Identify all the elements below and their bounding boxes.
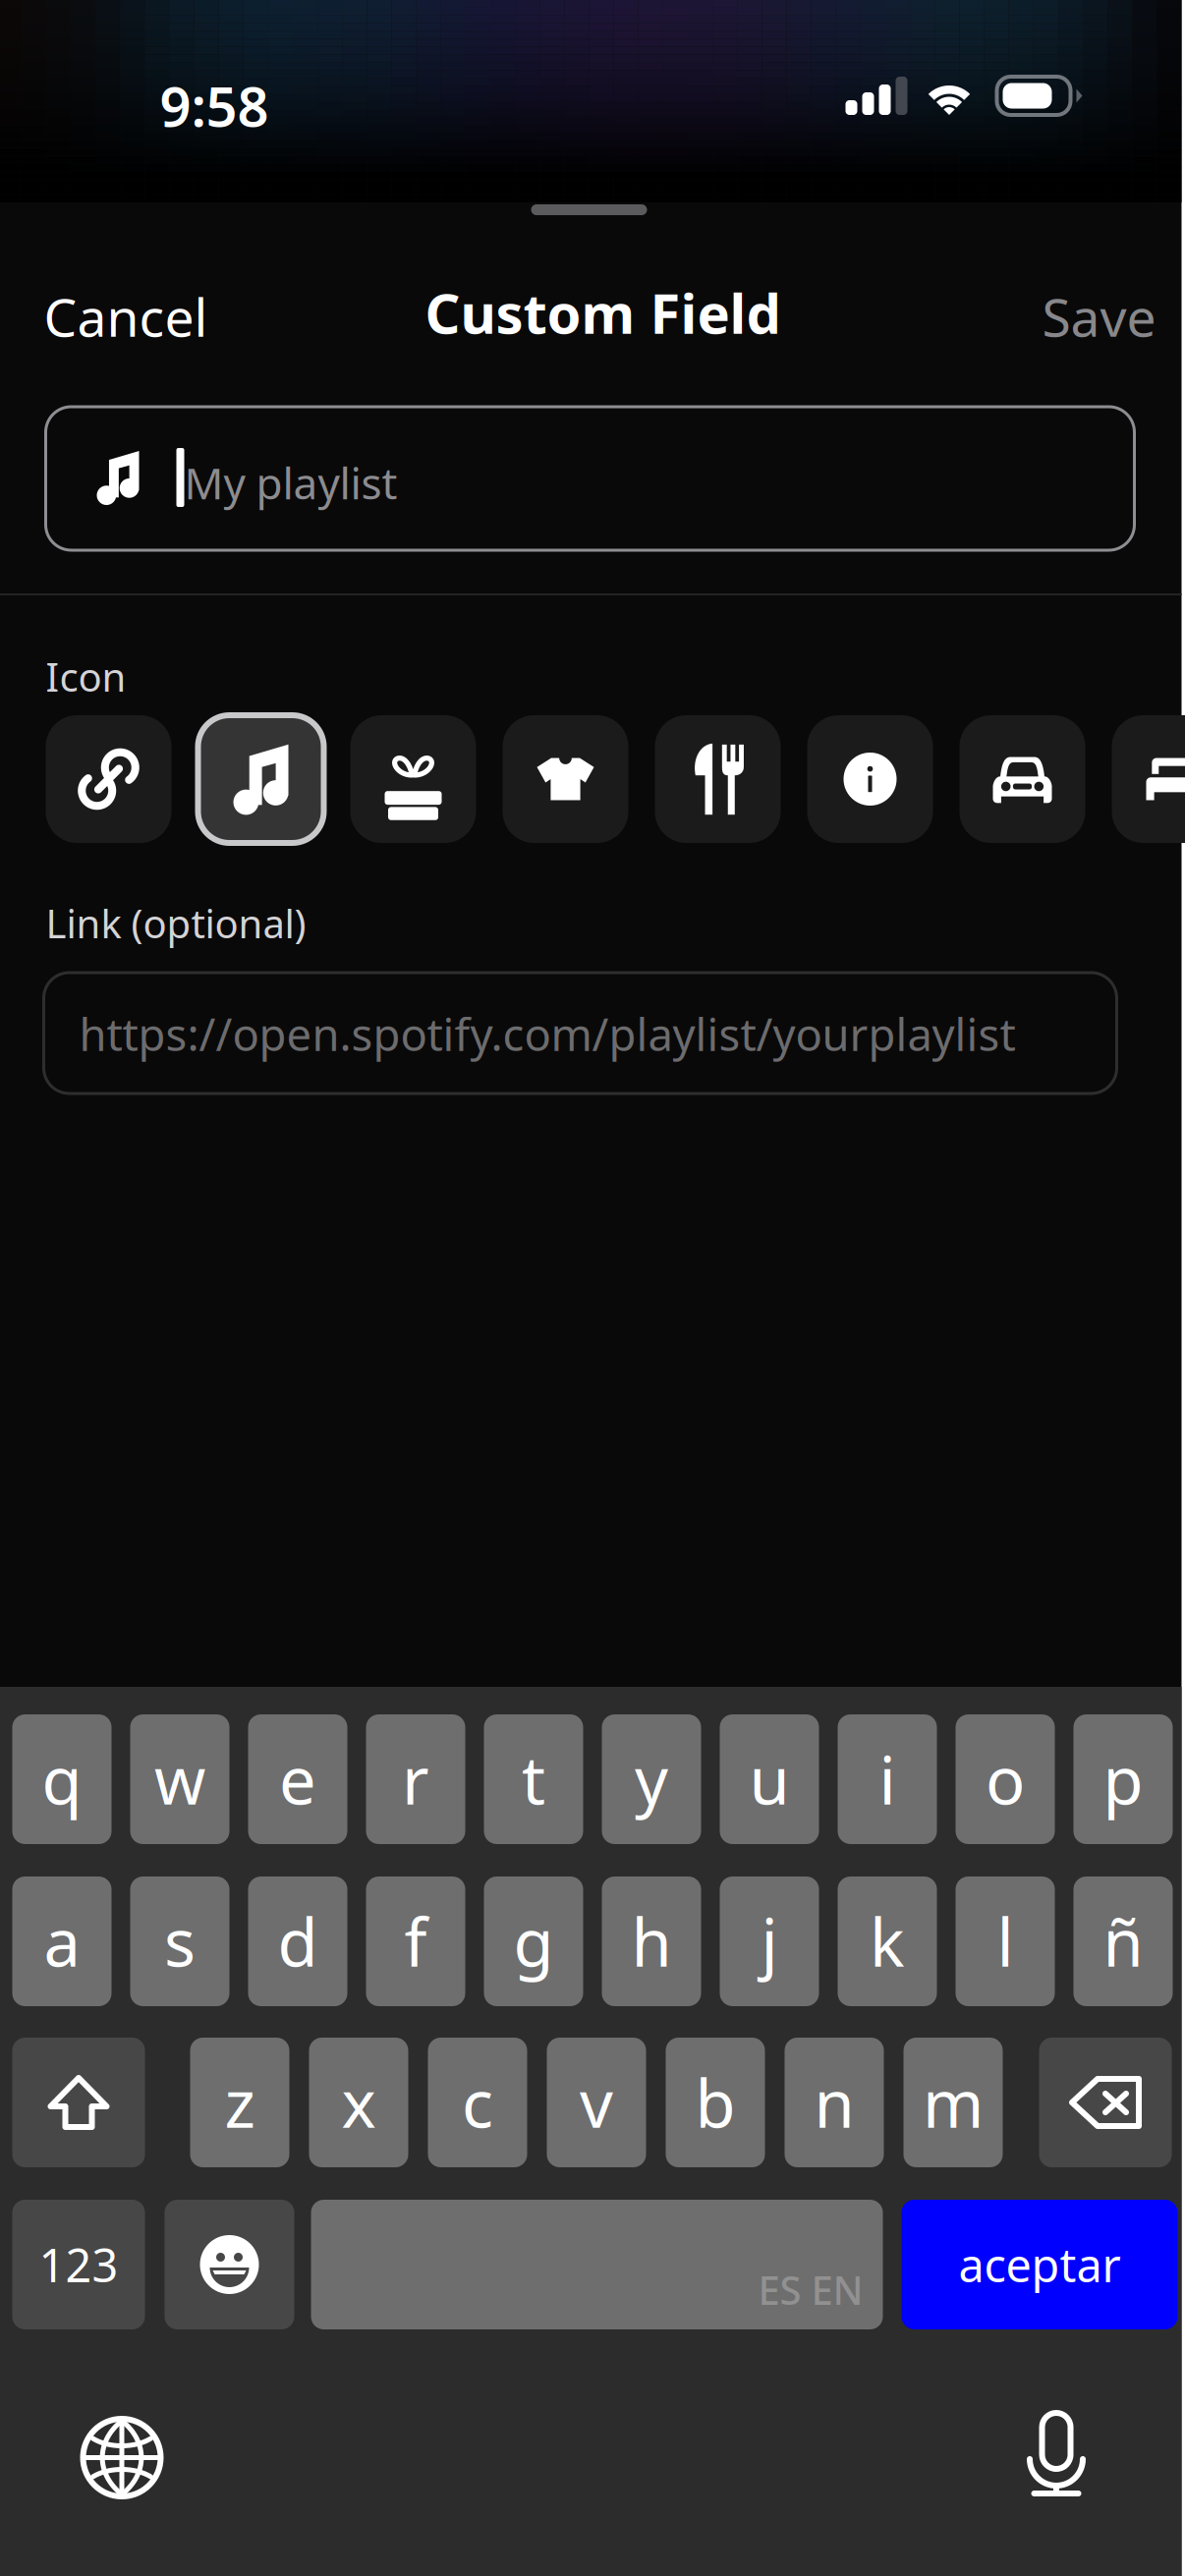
button[interactable]: Link [46,715,171,843]
button[interactable]: Switch keyboard [83,2419,161,2496]
button[interactable]: 123 [12,2200,145,2329]
button[interactable]: Delete [1039,2038,1172,2167]
staticText: x [341,2059,376,2146]
button[interactable]: e [248,1714,347,1844]
staticText: l [997,1898,1014,1985]
button[interactable]: g [484,1876,583,2006]
staticText: aceptar [959,2234,1121,2295]
staticText: My playlist [184,454,397,511]
staticText: d [278,1898,318,1985]
button[interactable]: j [720,1876,819,2006]
button[interactable]: Gift [350,715,476,843]
staticText: c [462,2059,493,2146]
staticText: k [870,1898,905,1985]
staticText: g [513,1898,554,1985]
button[interactable]: i [838,1714,937,1844]
button[interactable]: k [838,1876,937,2006]
button[interactable]: Save [1042,289,1156,344]
button[interactable]: Cancel [44,289,208,344]
staticText: Link (optional) [46,897,306,949]
button[interactable]: r [366,1714,465,1844]
button[interactable]: f [366,1876,465,2006]
button[interactable]: a [12,1876,112,2006]
staticText: Icon [46,650,126,703]
staticText: e [279,1736,316,1823]
button[interactable]: w [130,1714,229,1844]
button[interactable]: Clothing [503,715,628,843]
staticText: o [986,1736,1025,1823]
button[interactable]: t [484,1714,583,1844]
button[interactable]: ñ [1073,1876,1173,2006]
button[interactable]: o [956,1714,1055,1844]
button[interactable]: h [602,1876,701,2006]
staticText: 9:58 [160,69,269,142]
staticText: v [580,2059,613,2146]
button[interactable]: Info [807,715,933,843]
button[interactable]: x [309,2038,408,2167]
button[interactable]: Food [655,715,781,843]
button[interactable]: c [428,2038,527,2167]
button[interactable]: z [190,2038,289,2167]
staticText: r [402,1736,429,1823]
button[interactable]: s [130,1876,229,2006]
button[interactable]: Space [311,2200,883,2329]
staticText: h [631,1898,672,1985]
button[interactable]: Car [959,715,1085,843]
staticText: j [761,1898,778,1985]
button[interactable]: d [248,1876,347,2006]
staticText: ñ [1103,1898,1143,1985]
button[interactable]: y [602,1714,701,1844]
staticText: w [154,1736,205,1823]
button[interactable]: m [903,2038,1003,2167]
button[interactable]: Shift [12,2038,145,2167]
button[interactable]: Music note [198,715,324,843]
staticText: y [635,1736,668,1823]
button[interactable]: q [12,1714,112,1844]
staticText: https://open.spotify.com/playlist/yourpl… [79,1004,1016,1063]
staticText: p [1103,1736,1143,1823]
staticText: Custom Field [425,276,781,349]
staticText: n [814,2059,854,2146]
button[interactable]: Dictate [1028,2413,1084,2497]
staticText: m [923,2059,984,2146]
staticText: a [44,1898,80,1985]
button[interactable]: l [956,1876,1055,2006]
staticText: t [522,1736,545,1823]
staticText: s [164,1898,196,1985]
button[interactable]: n [785,2038,884,2167]
staticText: 123 [39,2234,118,2295]
button[interactable]: Emoji [165,2200,294,2329]
button[interactable]: Hotel [1112,715,1185,843]
staticText: ES EN [758,2263,863,2316]
staticText: q [42,1736,82,1823]
staticText: Save [1042,282,1156,351]
staticText: b [695,2059,735,2146]
staticText: i [879,1736,896,1823]
button[interactable]: v [547,2038,646,2167]
staticText: f [404,1898,427,1985]
button[interactable]: p [1073,1714,1173,1844]
staticText: z [225,2059,255,2146]
staticText: u [749,1736,790,1823]
button[interactable]: u [720,1714,819,1844]
staticText: Cancel [44,282,208,351]
button[interactable]: aceptar [902,2200,1178,2329]
button[interactable]: b [666,2038,765,2167]
